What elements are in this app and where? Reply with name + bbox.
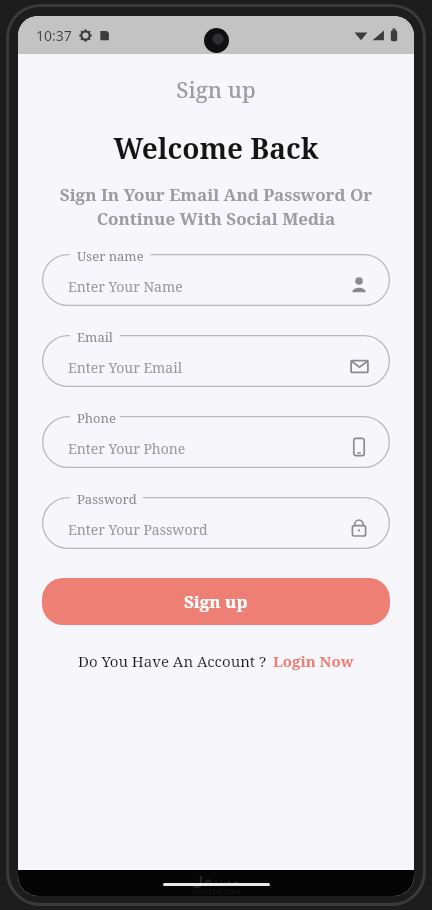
staticText: Sign up bbox=[18, 74, 414, 104]
button[interactable]: Login Now bbox=[273, 651, 354, 671]
staticText: مستقل bbox=[192, 874, 240, 889]
staticText: Enter Your Email bbox=[68, 358, 183, 377]
staticText: Enter Your Password bbox=[68, 520, 208, 539]
button[interactable]: Sign up bbox=[42, 578, 390, 625]
button[interactable]: Password bbox=[42, 497, 390, 549]
staticText: Password bbox=[77, 490, 137, 508]
other: Password bbox=[348, 517, 370, 539]
staticText: Email bbox=[77, 328, 113, 346]
other: Phone bbox=[348, 436, 370, 458]
button[interactable]: Email bbox=[42, 335, 390, 387]
staticText: Login Now bbox=[273, 651, 354, 671]
staticText: Enter Your Phone bbox=[68, 439, 186, 458]
button[interactable]: User name bbox=[42, 254, 390, 306]
staticText: User name bbox=[77, 247, 144, 265]
staticText: 10:37 bbox=[36, 26, 72, 45]
other: User name bbox=[348, 274, 370, 296]
staticText: mostaql.com bbox=[192, 886, 241, 896]
staticText: Phone bbox=[77, 409, 116, 427]
staticText: Sign up bbox=[184, 590, 248, 613]
staticText: Sign In Your Email And Password Or Conti… bbox=[40, 183, 392, 230]
staticText: Do You Have An Account ? bbox=[78, 651, 267, 671]
staticText: Welcome Back bbox=[18, 129, 414, 167]
button[interactable]: Phone bbox=[42, 416, 390, 468]
staticText: Enter Your Name bbox=[68, 277, 183, 296]
other: Email bbox=[348, 355, 370, 377]
